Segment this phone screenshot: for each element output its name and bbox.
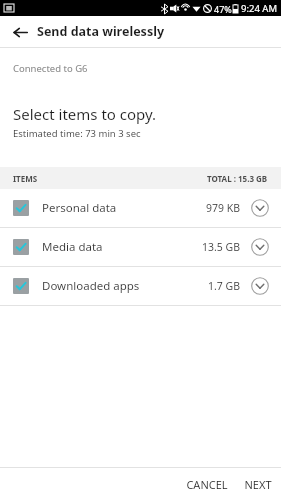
staticText: ITEMS [13,173,38,184]
staticText: CANCEL [186,477,228,492]
staticText: NEXT [244,477,272,492]
staticText: Send data wirelessly [37,23,165,40]
button[interactable]: CANCEL [178,468,236,500]
button[interactable]: Checkbox selected [0,228,281,266]
button[interactable]: Checkbox selected [0,267,281,305]
button[interactable]: NEXT [236,468,281,500]
staticText: Select items to copy. [13,104,157,124]
staticText: Downloaded apps [42,278,140,294]
staticText: 1.7 GB [208,279,241,293]
button[interactable]: Expand Media data [249,236,271,258]
staticText: Personal data [42,200,117,216]
staticText: 47% [214,3,232,15]
staticText: 13.5 GB [202,240,241,254]
button[interactable]: Checkbox selected [0,189,281,227]
button[interactable]: Checkbox selected [13,200,29,216]
staticText: Estimated time: 73 min 3 sec [13,127,141,140]
staticText: TOTAL : 15.3 GB [207,173,268,184]
button[interactable]: Checkbox selected [13,239,29,255]
staticText: 9:24 AM [241,2,278,15]
button[interactable]: Expand Downloaded apps [249,275,271,297]
staticText: 979 KB [206,201,241,215]
staticText: Connected to G6 [13,62,88,75]
button[interactable]: Checkbox selected [13,278,29,294]
button[interactable]: Expand Personal data [249,197,271,219]
staticText: Media data [42,239,103,255]
button[interactable]: Back [8,20,32,44]
